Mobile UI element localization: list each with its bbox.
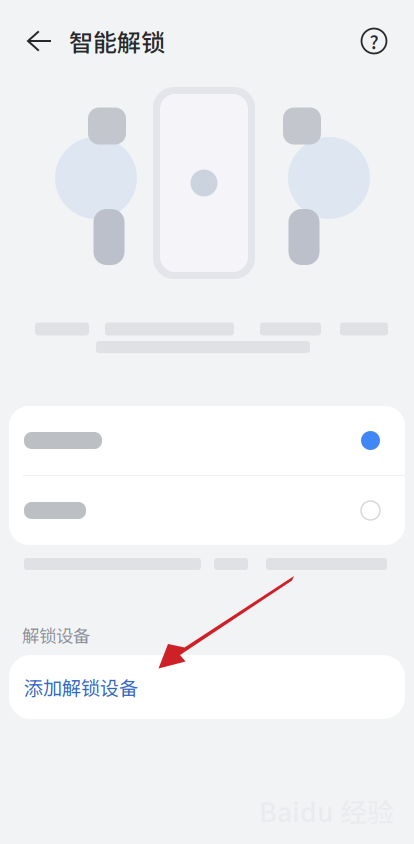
staticText: 解锁设备 [22,622,90,648]
button[interactable] [9,476,405,545]
button[interactable]: 帮助 [354,15,394,67]
staticText: 添加解锁设备 [24,673,138,701]
button[interactable]: 添加解锁设备 [9,655,405,719]
staticText: Baidu 经验 [259,791,394,830]
button[interactable] [9,406,405,475]
staticText: 智能解锁 [69,24,165,58]
button[interactable]: 返回 [19,15,59,67]
staticText: ? [369,27,378,54]
